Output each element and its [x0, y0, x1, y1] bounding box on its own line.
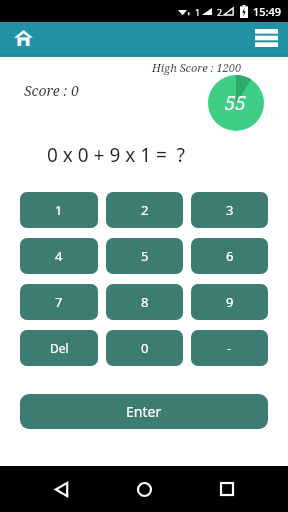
button[interactable]: 7 — [20, 284, 98, 320]
staticText: 3 — [226, 201, 234, 219]
button[interactable]: - — [191, 330, 268, 366]
staticText: 15:49 — [253, 4, 282, 19]
button[interactable]: Home — [122, 467, 166, 511]
staticText: 1 — [195, 6, 201, 18]
button[interactable]: 0 — [106, 330, 183, 366]
button[interactable]: Back — [39, 467, 83, 511]
staticText: 1 — [55, 201, 63, 219]
staticText: Enter — [126, 402, 162, 421]
staticText: Score : 0 — [24, 81, 79, 100]
staticText: 6 — [226, 247, 234, 265]
staticText: 8 — [141, 293, 149, 311]
button[interactable]: Del — [20, 330, 98, 366]
button[interactable]: Enter — [20, 394, 268, 429]
staticText: 4 — [55, 247, 63, 265]
button[interactable]: 2 — [106, 192, 183, 228]
staticText: 2 — [217, 6, 223, 18]
button[interactable]: 4 — [20, 238, 98, 274]
button[interactable]: 9 — [191, 284, 268, 320]
staticText: 55 — [225, 90, 247, 116]
button[interactable]: Home — [8, 23, 38, 53]
button[interactable]: Menu — [250, 22, 282, 54]
staticText: 9 — [226, 293, 234, 311]
staticText: 2 — [141, 201, 149, 219]
staticText: Del — [50, 340, 69, 356]
staticText: 7 — [55, 293, 63, 311]
button[interactable]: 5 — [106, 238, 183, 274]
button[interactable]: Recent apps — [205, 467, 249, 511]
staticText: High Score : 1200 — [152, 60, 242, 75]
staticText: 5 — [141, 247, 149, 265]
button[interactable]: 6 — [191, 238, 268, 274]
staticText: 0 x 0 + 9 x 1 = ? — [47, 142, 186, 168]
staticText: 0 — [141, 339, 149, 357]
button[interactable]: 8 — [106, 284, 183, 320]
staticText: - — [227, 339, 232, 357]
button[interactable]: 3 — [191, 192, 268, 228]
button[interactable]: 1 — [20, 192, 98, 228]
